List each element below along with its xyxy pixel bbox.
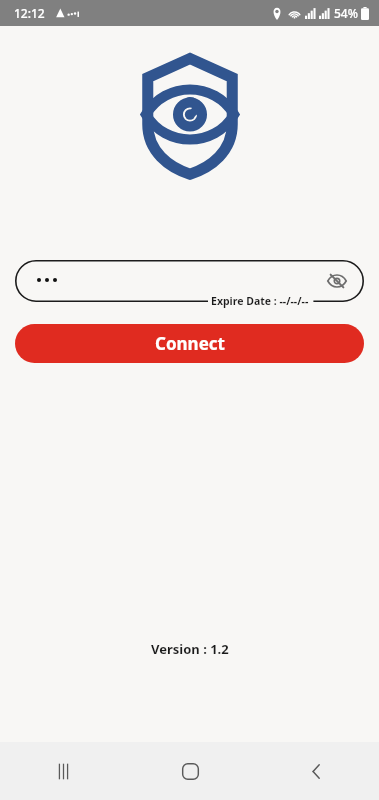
staticText: Connect	[155, 332, 225, 355]
button[interactable]: Recents	[0, 742, 127, 800]
staticText: Version : 1.2	[151, 640, 229, 658]
button[interactable]: Show password	[15, 260, 364, 302]
staticText: Expire Date : --/--/--	[211, 294, 309, 308]
staticText: 54%	[334, 5, 358, 21]
button[interactable]: Back	[253, 742, 379, 800]
button[interactable]: Home	[127, 742, 253, 800]
button[interactable]: Connect	[15, 324, 364, 363]
staticText: 12:12	[14, 5, 45, 21]
button[interactable]: Show password	[324, 268, 350, 294]
